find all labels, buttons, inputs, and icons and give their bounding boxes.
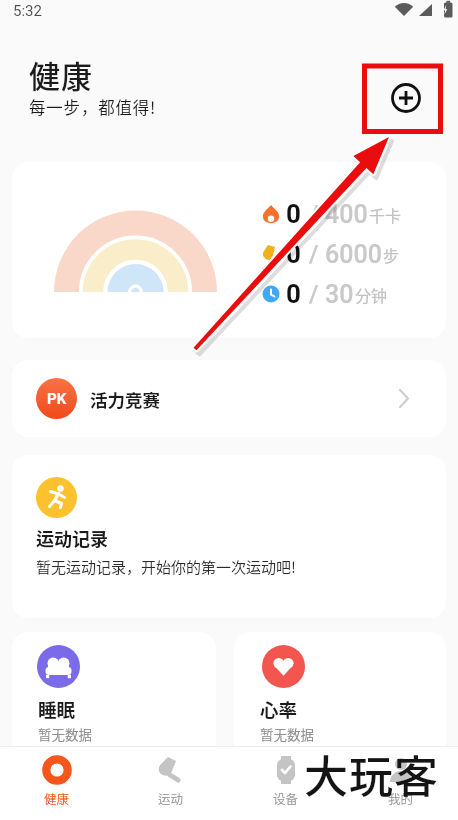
staticText: 5:32 [13,2,42,20]
staticText: 运动记录 [36,525,108,551]
staticText: 每一步，都值得! [29,95,157,119]
staticText: 健康 [44,789,70,807]
button[interactable]: 运动记录 [12,455,446,618]
staticText: / [309,280,319,308]
staticText: 健康 [29,52,93,97]
staticText: 分钟 [355,283,388,306]
staticText: PK [47,390,67,408]
button[interactable]: 睡眠 [12,632,216,782]
staticText: 千卡 [369,203,402,226]
staticText: 400 [325,200,368,229]
staticText: 暂无运动记录，开始你的第一次运动吧! [36,556,296,578]
button[interactable] [384,76,428,120]
staticText: 0 [286,199,301,229]
staticText: 6000 [325,240,382,269]
staticText: 我的 [388,789,414,807]
staticText: 暂无数据 [38,724,92,744]
staticText: 30 [325,280,354,309]
staticText: 0 [286,279,301,309]
staticText: / [309,240,319,268]
button[interactable]: 我的 [343,746,458,820]
button[interactable]: 健康 [0,746,114,820]
button[interactable]: 心率 [234,632,446,782]
button[interactable]: PK [12,360,446,437]
staticText: 暂无数据 [260,724,314,744]
staticText: 0 [286,239,301,269]
staticText: 运动 [158,789,184,807]
button[interactable]: 设备 [228,746,343,820]
staticText: 心率 [260,696,298,723]
button[interactable]: 0 [12,162,446,338]
staticText: 大玩客 [304,742,439,806]
staticText: 设备 [273,789,299,807]
staticText: / [309,200,319,228]
staticText: 睡眠 [38,696,76,723]
staticText: 步 [383,243,400,266]
button[interactable]: 运动 [114,746,228,820]
staticText: 活力竞赛 [90,387,160,412]
